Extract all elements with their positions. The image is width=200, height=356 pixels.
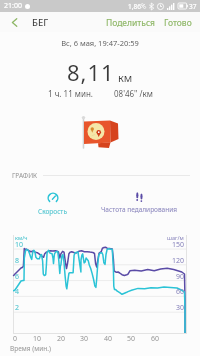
staticText: 1,86 xyxy=(128,2,141,11)
staticText: 10 xyxy=(33,334,42,344)
staticText: 8,11 xyxy=(67,57,115,87)
staticText: 0 xyxy=(13,334,18,344)
staticText: Время (мин.) xyxy=(10,344,51,353)
staticText: 4 xyxy=(15,287,20,297)
staticText: Скорость xyxy=(38,207,67,216)
staticText: 150 xyxy=(172,240,185,250)
staticText: шаг/м xyxy=(167,234,184,241)
button[interactable]: Назад xyxy=(0,12,28,32)
staticText: 90 xyxy=(176,272,185,282)
staticText: ГРАФИК xyxy=(12,171,38,180)
staticText: Вс, 6 мая, 19:47-20:59 xyxy=(0,38,200,48)
button[interactable]: Готово xyxy=(162,12,194,32)
staticText: 21:00 xyxy=(4,1,22,11)
staticText: 30 xyxy=(80,334,89,344)
staticText: 08'46" /км xyxy=(114,88,153,99)
button[interactable]: Поделиться xyxy=(104,12,157,32)
staticText: 37 xyxy=(189,2,197,11)
staticText: 40 xyxy=(104,334,113,344)
staticText: 10 xyxy=(15,240,24,250)
staticText: 1 ч. 11 мин. xyxy=(48,88,93,99)
staticText: БЕГ xyxy=(32,16,49,29)
staticText: 60 xyxy=(151,334,160,344)
staticText: Частота педалирования xyxy=(101,205,178,214)
staticText: Готово xyxy=(164,17,192,27)
staticText: 30 xyxy=(176,303,185,313)
staticText: 60 xyxy=(176,287,185,297)
button[interactable]: Частота педалирования xyxy=(101,192,178,214)
staticText: 50 xyxy=(127,334,136,344)
staticText: Поделиться xyxy=(106,17,155,27)
staticText: км xyxy=(118,70,133,85)
staticText: 2 xyxy=(15,303,20,313)
staticText: 6 xyxy=(15,272,20,282)
staticText: 20 xyxy=(57,334,66,344)
button[interactable]: Скорость xyxy=(38,192,67,216)
staticText: км/ч xyxy=(15,234,28,241)
staticText: 120 xyxy=(172,256,185,266)
staticText: 8 xyxy=(15,256,20,266)
